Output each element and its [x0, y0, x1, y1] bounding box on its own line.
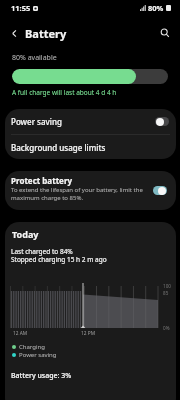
button[interactable]: Off	[155, 117, 169, 126]
staticText: Battery	[25, 26, 67, 41]
staticText: Stopped charging 15 h 2 m ago	[11, 255, 107, 264]
button[interactable]: Protect battery	[5, 171, 176, 210]
staticText: 11:55	[11, 3, 31, 13]
button[interactable]: Power saving	[5, 109, 176, 134]
staticText: To extend the lifespan of your battery, …	[11, 186, 146, 202]
button[interactable]: Navigate up	[6, 25, 22, 41]
staticText: 12 AM	[13, 330, 28, 337]
staticText: 85	[163, 290, 169, 296]
button[interactable]: Search	[156, 24, 174, 42]
button[interactable]: On	[153, 186, 167, 195]
staticText: 100	[163, 283, 171, 289]
staticText: Background usage limits	[11, 142, 106, 153]
staticText: Battery usage: 3%	[11, 371, 72, 381]
staticText: Charging	[19, 343, 45, 351]
staticText: 0%	[163, 325, 170, 331]
staticText: Power saving	[19, 351, 57, 359]
button[interactable]: Background usage limits	[5, 135, 176, 159]
staticText: A full charge will last about 4 d 4 h	[12, 88, 117, 97]
staticText: 12 PM	[81, 330, 95, 337]
staticText: Power saving	[11, 116, 62, 127]
staticText: 80% available	[12, 53, 57, 63]
staticText: Today	[12, 228, 39, 240]
staticText: 80%	[148, 3, 164, 13]
staticText: Last charged to 84%	[11, 247, 73, 256]
staticText: Protect battery	[11, 175, 73, 186]
